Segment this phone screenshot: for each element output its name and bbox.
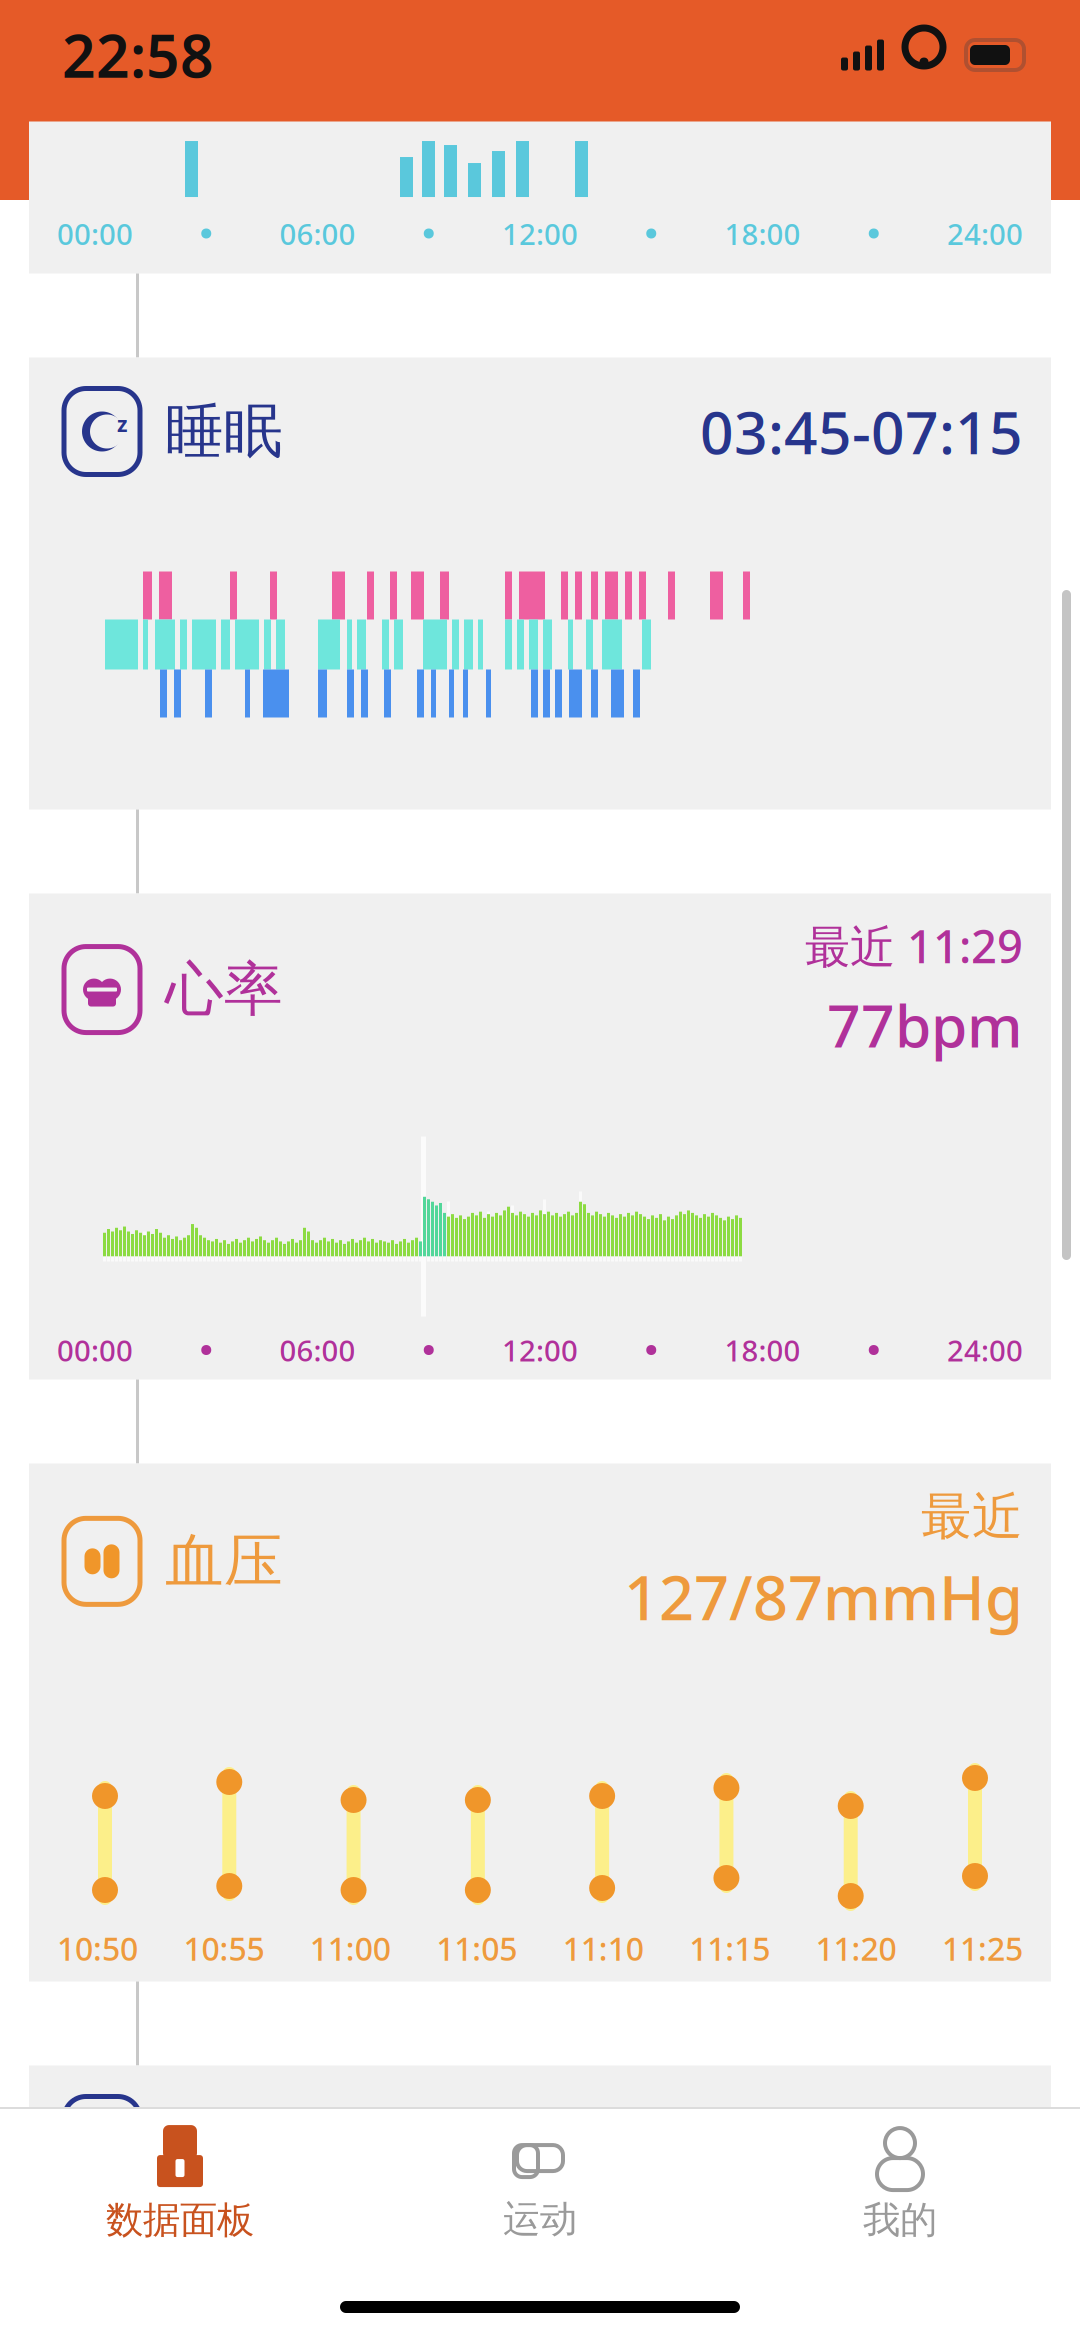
button[interactable]: z: [29, 357, 1051, 809]
button[interactable]: 我的: [720, 2115, 1080, 2253]
staticText: z: [117, 409, 128, 438]
staticText: 11:00: [310, 1927, 391, 1969]
staticText: 血压: [165, 1525, 283, 1597]
staticText: 11:05: [436, 1927, 517, 1969]
staticText: 06:00: [279, 214, 355, 253]
staticText: 数据面板: [418, 117, 662, 193]
staticText: 血氧: [165, 2103, 283, 2176]
staticText: 12:00: [502, 214, 578, 253]
staticText: 心率: [165, 953, 283, 1026]
staticText: 127/87mmHg: [624, 1556, 1023, 1637]
staticText: 10:55: [183, 1927, 264, 1969]
staticText: 03:45-07:15: [700, 392, 1023, 470]
staticText: 12:00: [502, 1330, 578, 1369]
staticText: 18:00: [724, 1330, 800, 1369]
button[interactable]: 数据面板: [0, 2115, 360, 2253]
staticText: 24:00: [947, 1330, 1023, 1369]
staticText: 我的: [863, 2197, 937, 2243]
button[interactable]: 心率: [29, 893, 1051, 1379]
staticText: 00:00: [57, 1330, 133, 1369]
staticText: 24:00: [947, 214, 1023, 253]
staticText: 10:50: [57, 1927, 138, 1969]
staticText: 最近: [921, 1485, 1023, 1548]
staticText: 最近 11:29: [805, 915, 1023, 976]
staticText: 77bpm: [827, 986, 1023, 1064]
staticText: 18:00: [724, 214, 800, 253]
button[interactable]: Share: [948, 107, 1044, 203]
button[interactable]: 运动: [360, 2116, 720, 2252]
staticText: 11:20: [816, 1927, 897, 1969]
staticText: 11:25: [942, 1927, 1023, 1969]
button[interactable]: 血氧: [29, 2065, 1051, 2185]
staticText: 11:10: [563, 1927, 644, 1969]
staticText: 11:15: [689, 1927, 770, 1969]
staticText: 运动: [503, 2196, 577, 2242]
staticText: 睡眠: [165, 395, 283, 468]
staticText: 00:00: [57, 214, 133, 253]
button[interactable]: 血压: [29, 1463, 1051, 1981]
staticText: 数据面板: [106, 2197, 254, 2243]
staticText: 22:58: [62, 16, 214, 94]
button[interactable]: 00:00: [29, 121, 1051, 273]
staticText: 06:00: [279, 1330, 355, 1369]
